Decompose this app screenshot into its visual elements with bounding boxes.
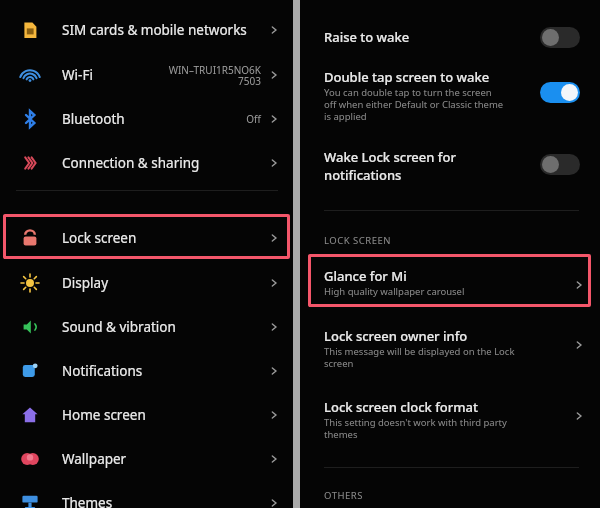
button[interactable]: On xyxy=(540,82,580,103)
staticText: Raise to wake xyxy=(324,28,410,46)
staticText: Off xyxy=(246,112,261,126)
staticText: WIN–TRUI1R5NO6K 7503 xyxy=(168,63,261,88)
button[interactable]: Double tap screen to wake xyxy=(300,64,600,130)
staticText: Glance for Mi xyxy=(324,267,407,285)
button[interactable]: Lock screen xyxy=(0,216,293,260)
staticText: Themes xyxy=(62,494,113,508)
button[interactable]: Notifications xyxy=(0,349,293,393)
staticText: Notifications xyxy=(62,362,143,380)
staticText: OTHERS xyxy=(324,489,363,502)
staticText: Double tap screen to wake xyxy=(324,68,490,86)
staticText: Home screen xyxy=(62,406,146,424)
button[interactable]: Sound & vibration xyxy=(0,305,293,349)
button[interactable]: SIM cards & mobile networks xyxy=(0,8,293,52)
staticText: Wallpaper xyxy=(62,450,127,468)
button[interactable]: Raise to wake xyxy=(300,12,600,60)
staticText: This setting doesn't work with third par… xyxy=(324,416,507,441)
button[interactable]: Off xyxy=(540,27,580,48)
staticText: Wi-Fi xyxy=(62,66,93,84)
button[interactable]: Lock screen clock format xyxy=(300,389,600,445)
staticText: Lock screen xyxy=(62,229,137,247)
staticText: This message will be displayed on the Lo… xyxy=(324,345,515,370)
staticText: Lock screen owner info xyxy=(324,327,468,345)
button[interactable]: Glance for Mi xyxy=(300,258,600,314)
staticText: High quality wallpaper carousel xyxy=(324,285,465,298)
button[interactable]: Wake Lock screen for notifications xyxy=(300,144,600,194)
staticText: Display xyxy=(62,274,109,292)
staticText: Lock screen clock format xyxy=(324,398,478,416)
staticText: Bluetooth xyxy=(62,110,125,128)
button[interactable]: Wi-Fi xyxy=(0,53,293,97)
staticText: Wake Lock screen for notifications xyxy=(324,148,456,184)
staticText: Sound & vibration xyxy=(62,318,176,336)
button[interactable]: Wallpaper xyxy=(0,437,293,481)
button[interactable]: Home screen xyxy=(0,393,293,437)
staticText: You can double tap to turn the screen of… xyxy=(324,86,504,123)
button[interactable]: Bluetooth xyxy=(0,97,293,141)
button[interactable]: Themes xyxy=(0,481,293,508)
staticText: LOCK SCREEN xyxy=(324,234,391,247)
staticText: SIM cards & mobile networks xyxy=(62,21,247,39)
button[interactable]: Off xyxy=(540,154,580,175)
staticText: Connection & sharing xyxy=(62,154,200,172)
button[interactable]: Lock screen owner info xyxy=(300,318,600,374)
button[interactable]: Connection & sharing xyxy=(0,141,293,185)
button[interactable]: Display xyxy=(0,261,293,305)
